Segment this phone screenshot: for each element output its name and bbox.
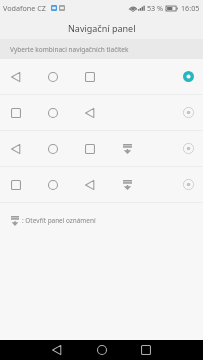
staticText: Navigační panel xyxy=(68,22,136,34)
button[interactable]: Home xyxy=(92,340,112,360)
button[interactable] xyxy=(0,95,203,130)
button[interactable] xyxy=(0,59,203,94)
staticText: Vyberte kombinaci navigačních tlačítek xyxy=(10,45,129,54)
staticText: 16:05 xyxy=(181,3,200,13)
button[interactable]: Recents xyxy=(136,340,156,360)
staticText: 53 % xyxy=(147,3,164,13)
staticText: : Otevřít panel oznámení xyxy=(22,216,96,225)
button[interactable]: Back xyxy=(47,340,67,360)
button[interactable] xyxy=(0,167,203,202)
staticText: Vodafone CZ xyxy=(3,3,46,13)
button[interactable] xyxy=(0,131,203,166)
